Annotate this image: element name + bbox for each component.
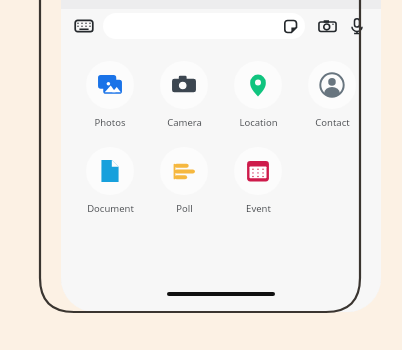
staticText: Location [239,116,278,129]
staticText: Camera [167,116,202,129]
button[interactable]: Contact [295,61,369,129]
button[interactable]: Camera [147,61,221,129]
button[interactable]: Photos [73,61,147,129]
button[interactable]: Location [221,61,295,129]
staticText: Event [246,202,271,215]
staticText: Poll [176,202,193,215]
button[interactable]: Event [221,147,295,215]
staticText: Contact [315,116,350,129]
staticText: Document [87,202,134,215]
button[interactable]: Document [73,147,147,215]
button[interactable]: Camera [315,14,339,38]
button[interactable]: Poll [147,147,221,215]
staticText: Photos [94,116,126,129]
button[interactable]: Keyboard [73,15,95,37]
button[interactable]: Voice message [345,14,369,38]
button[interactable] [103,13,305,39]
